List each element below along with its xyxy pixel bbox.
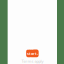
button[interactable]: Get started xyxy=(26,49,39,57)
staticText: Get started xyxy=(27,45,38,61)
staticText: Terms apply xyxy=(21,58,43,64)
